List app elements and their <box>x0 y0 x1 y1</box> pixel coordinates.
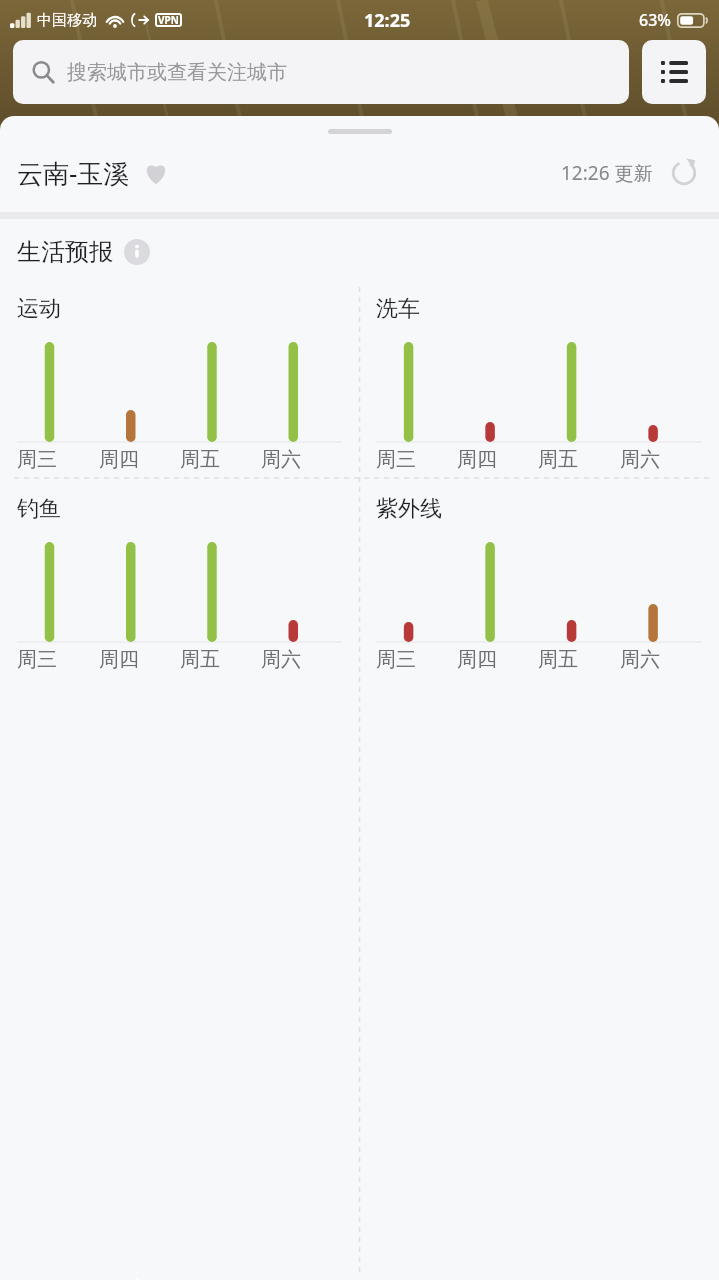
button[interactable]: 钓鱼 <box>0 479 359 678</box>
staticText: 搜索城市或查看关注城市 <box>67 60 287 85</box>
staticText: 12:26 更新 <box>561 160 653 186</box>
staticText: 12:25 <box>364 8 411 33</box>
staticText: 周六 <box>620 447 660 472</box>
staticText: 紫外线 <box>376 495 442 523</box>
staticText: 云南-玉溪 <box>17 155 130 191</box>
staticText: 周四 <box>99 647 139 672</box>
staticText: 洗车 <box>376 295 420 323</box>
button[interactable]: 搜索城市或查看关注城市 <box>13 40 629 104</box>
staticText: 周五 <box>180 647 220 672</box>
staticText: 中国移动 <box>37 11 97 30</box>
staticText: 周四 <box>457 447 497 472</box>
staticText: 周三 <box>376 647 416 672</box>
button[interactable]: City list <box>642 40 706 104</box>
button[interactable]: 运动 <box>0 279 359 478</box>
staticText: 周六 <box>261 647 301 672</box>
button[interactable]: Info <box>123 238 151 266</box>
staticText: 周五 <box>538 647 578 672</box>
staticText: 周四 <box>457 647 497 672</box>
button[interactable]: Favorite <box>141 158 171 188</box>
staticText: 周三 <box>376 447 416 472</box>
staticText: 运动 <box>17 295 61 323</box>
staticText: 周三 <box>17 647 57 672</box>
staticText: 周五 <box>180 447 220 472</box>
button[interactable]: Refresh <box>666 155 702 191</box>
staticText: 周六 <box>261 447 301 472</box>
staticText: 钓鱼 <box>17 495 61 523</box>
button[interactable]: 紫外线 <box>359 479 719 678</box>
button[interactable]: 洗车 <box>359 279 719 478</box>
staticText: VPN <box>158 13 179 27</box>
staticText: 63% <box>639 9 671 31</box>
staticText: 周四 <box>99 447 139 472</box>
staticText: 周五 <box>538 447 578 472</box>
staticText: 周三 <box>17 447 57 472</box>
staticText: 周六 <box>620 647 660 672</box>
staticText: 生活预报 <box>17 237 113 267</box>
